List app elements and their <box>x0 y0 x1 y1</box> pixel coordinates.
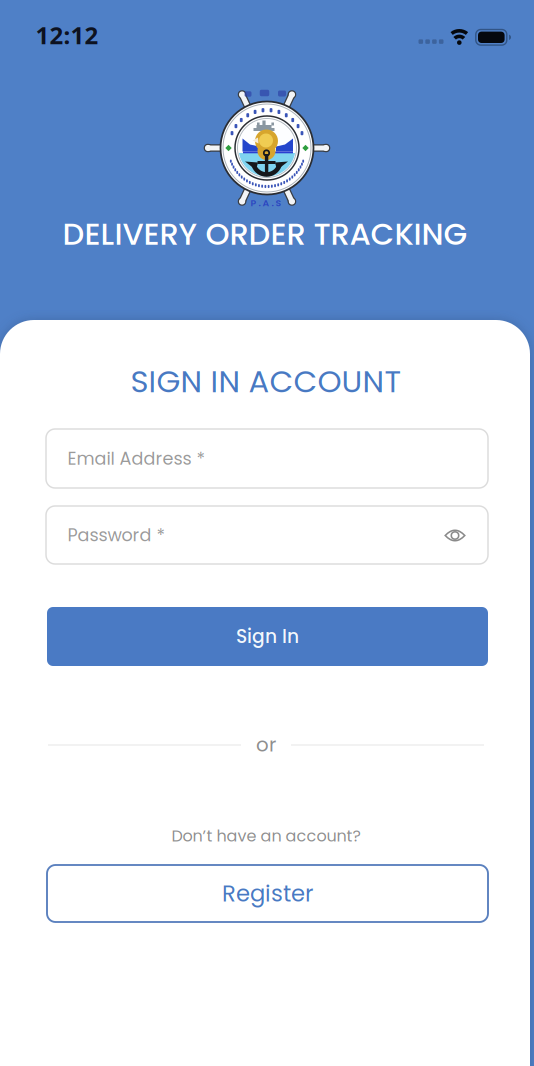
staticText: SIGN IN ACCOUNT <box>130 360 401 403</box>
staticText: Email Address * <box>67 446 205 471</box>
staticText: 12:12 <box>35 19 98 51</box>
staticText: or <box>256 731 276 758</box>
staticText: DELIVERY ORDER TRACKING <box>62 212 467 255</box>
staticText: P . A . S <box>250 196 281 210</box>
button[interactable]: Show password <box>433 513 477 557</box>
staticText: Don’t have an account? <box>171 825 360 847</box>
button[interactable]: Register <box>47 865 488 922</box>
staticText: Sign In <box>236 623 299 649</box>
staticText: Register <box>222 878 313 909</box>
staticText: Password * <box>67 523 165 547</box>
button[interactable]: Email Address * <box>46 429 488 488</box>
button[interactable]: Password * <box>46 506 488 564</box>
button[interactable]: Sign In <box>47 607 488 666</box>
